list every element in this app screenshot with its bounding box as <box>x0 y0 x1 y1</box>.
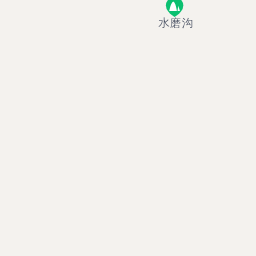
button[interactable]: 水磨沟 scenic area marker <box>157 0 193 29</box>
